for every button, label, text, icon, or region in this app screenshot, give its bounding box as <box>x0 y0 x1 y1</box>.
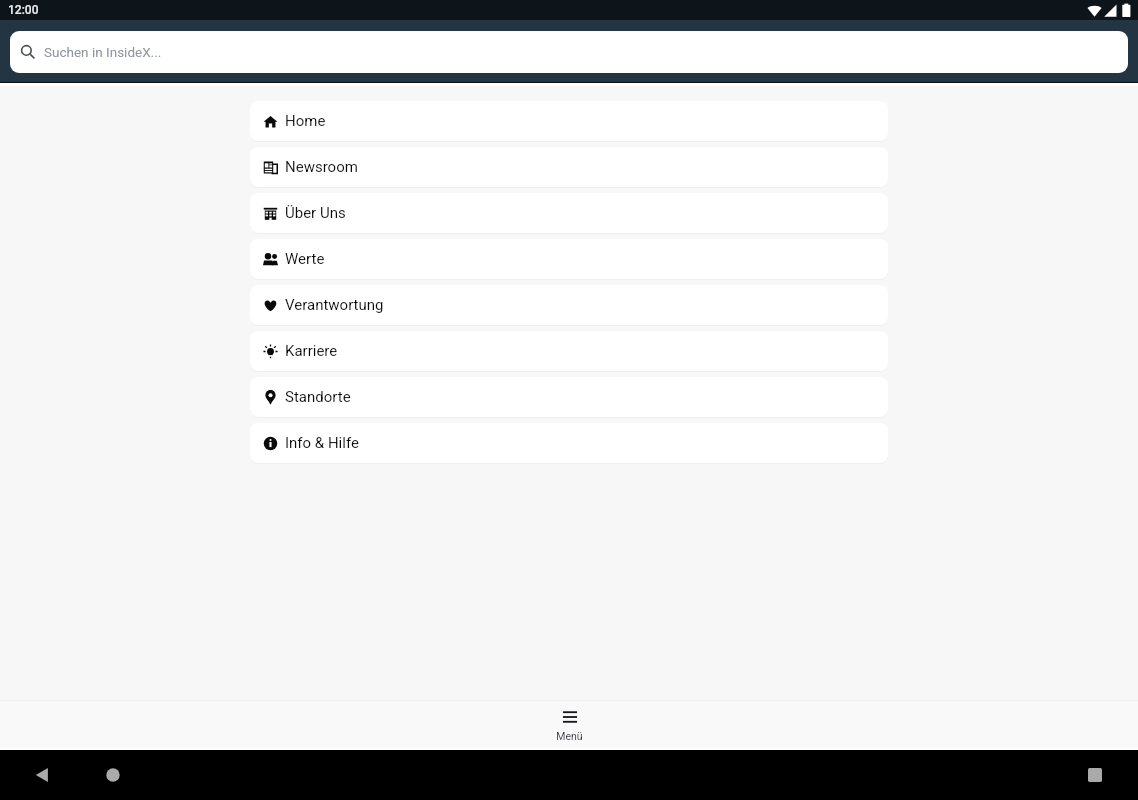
button[interactable]: Standorte <box>250 377 888 417</box>
button[interactable]: Home <box>250 101 888 141</box>
staticText: Über Uns <box>285 204 346 222</box>
button[interactable]: Über Uns <box>250 193 888 233</box>
other: Recent apps <box>1088 768 1102 782</box>
staticText: Info & Hilfe <box>285 434 359 452</box>
button[interactable]: Werte <box>250 239 888 279</box>
staticText: Karriere <box>285 342 338 360</box>
button[interactable]: Verantwortung <box>250 285 888 325</box>
button[interactable]: Suchen in InsideX... <box>10 31 1128 73</box>
staticText: Newsroom <box>285 158 358 176</box>
staticText: Suchen in InsideX... <box>44 44 162 60</box>
staticText: Werte <box>285 250 325 268</box>
staticText: 12:00 <box>8 3 39 17</box>
button[interactable]: Karriere <box>250 331 888 371</box>
staticText: Home <box>285 112 326 130</box>
staticText: Menü <box>556 730 583 742</box>
other: Back <box>35 768 49 782</box>
button[interactable]: Menü <box>556 709 583 742</box>
staticText: Standorte <box>285 388 351 406</box>
button[interactable]: Info & Hilfe <box>250 423 888 463</box>
other: Home <box>106 768 120 782</box>
staticText: Verantwortung <box>285 296 384 314</box>
button[interactable]: Newsroom <box>250 147 888 187</box>
